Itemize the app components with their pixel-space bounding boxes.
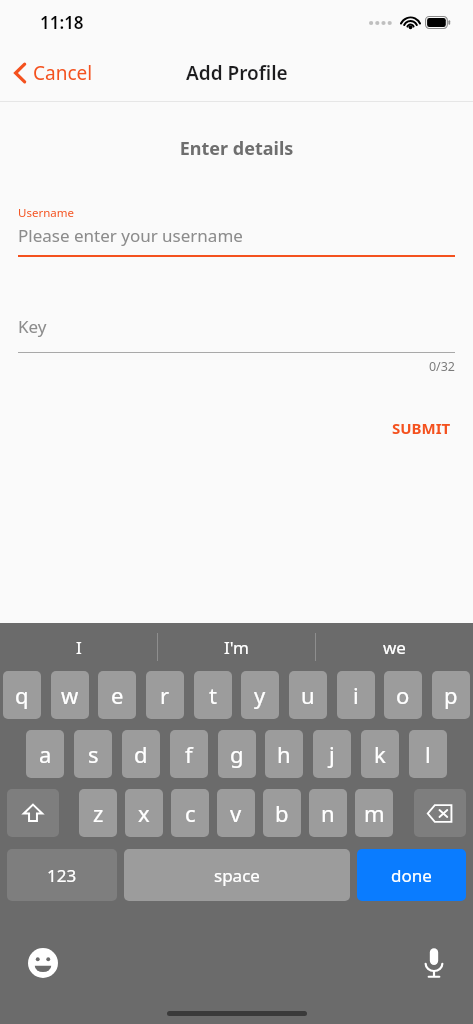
staticText: I: [76, 636, 82, 659]
button[interactable]: h: [265, 730, 303, 778]
staticText: q: [15, 680, 29, 710]
staticText: 123: [47, 864, 77, 887]
staticText: l: [425, 739, 431, 769]
staticText: i: [353, 680, 359, 710]
staticText: n: [321, 798, 335, 828]
button[interactable]: c: [171, 789, 209, 837]
button[interactable]: I'm: [158, 623, 315, 671]
staticText: c: [185, 798, 196, 828]
button[interactable]: u: [289, 671, 327, 719]
button[interactable]: k: [361, 730, 399, 778]
button[interactable]: t: [194, 671, 232, 719]
button[interactable]: we: [316, 623, 473, 671]
staticText: we: [383, 636, 406, 659]
staticText: j: [329, 739, 335, 769]
staticText: r: [160, 680, 170, 710]
button[interactable]: Shift: [7, 789, 59, 837]
staticText: 0/32: [18, 358, 455, 375]
staticText: m: [364, 798, 385, 828]
button[interactable]: done: [357, 849, 466, 901]
button[interactable]: g: [218, 730, 256, 778]
button[interactable]: r: [146, 671, 184, 719]
staticText: s: [88, 739, 99, 769]
staticText: k: [374, 739, 386, 769]
staticText: b: [275, 798, 289, 828]
button[interactable]: space: [124, 849, 350, 901]
button[interactable]: Dictation: [417, 941, 451, 985]
button[interactable]: j: [313, 730, 351, 778]
staticText: p: [444, 680, 458, 710]
staticText: Enter details: [0, 136, 473, 161]
button[interactable]: q: [3, 671, 41, 719]
staticText: d: [134, 739, 148, 769]
staticText: Please enter your username: [18, 224, 243, 247]
button[interactable]: x: [125, 789, 163, 837]
staticText: Cancel: [33, 60, 93, 86]
button[interactable]: Key: [18, 315, 455, 375]
staticText: v: [230, 798, 242, 828]
staticText: f: [185, 739, 193, 769]
button[interactable]: Username: [18, 205, 455, 257]
button[interactable]: i: [337, 671, 375, 719]
staticText: u: [301, 680, 315, 710]
staticText: w: [61, 680, 79, 710]
button[interactable]: f: [170, 730, 208, 778]
button[interactable]: l: [409, 730, 447, 778]
staticText: h: [277, 739, 291, 769]
staticText: 11:18: [40, 11, 84, 34]
button[interactable]: e: [98, 671, 136, 719]
staticText: a: [39, 739, 52, 769]
staticText: Key: [18, 315, 47, 338]
staticText: SUBMIT: [392, 418, 451, 438]
button[interactable]: a: [26, 730, 64, 778]
staticText: y: [254, 680, 266, 710]
staticText: Add Profile: [186, 60, 288, 86]
staticText: t: [209, 680, 217, 710]
staticText: Username: [18, 205, 74, 221]
button[interactable]: Emoji: [22, 942, 64, 984]
button[interactable]: y: [241, 671, 279, 719]
button[interactable]: n: [309, 789, 347, 837]
button[interactable]: I: [0, 623, 157, 671]
button[interactable]: v: [217, 789, 255, 837]
button[interactable]: w: [51, 671, 89, 719]
button[interactable]: Backspace: [414, 789, 466, 837]
staticText: x: [138, 798, 150, 828]
button[interactable]: Cancel: [0, 52, 107, 94]
button[interactable]: z: [79, 789, 117, 837]
button[interactable]: p: [432, 671, 470, 719]
button[interactable]: m: [355, 789, 393, 837]
staticText: e: [111, 680, 124, 710]
button[interactable]: b: [263, 789, 301, 837]
button[interactable]: s: [74, 730, 112, 778]
staticText: I'm: [224, 636, 249, 659]
button[interactable]: 123: [7, 849, 117, 901]
button[interactable]: o: [384, 671, 422, 719]
button[interactable]: d: [122, 730, 160, 778]
staticText: z: [93, 798, 104, 828]
staticText: space: [214, 864, 260, 887]
staticText: g: [230, 739, 244, 769]
staticText: o: [396, 680, 410, 710]
staticText: done: [391, 864, 432, 887]
button[interactable]: SUBMIT: [378, 409, 465, 447]
